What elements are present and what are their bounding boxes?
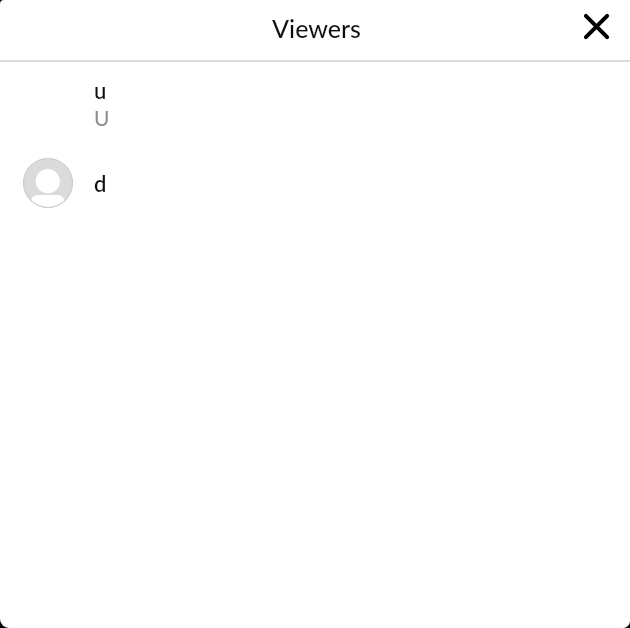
button[interactable]: Close: [572, 2, 620, 50]
staticText: Viewers: [272, 13, 361, 43]
staticText: d: [94, 170, 107, 196]
staticText: u: [94, 77, 107, 103]
button[interactable]: d: [0, 148, 630, 218]
staticText: U: [94, 105, 110, 130]
button[interactable]: u: [0, 62, 630, 148]
